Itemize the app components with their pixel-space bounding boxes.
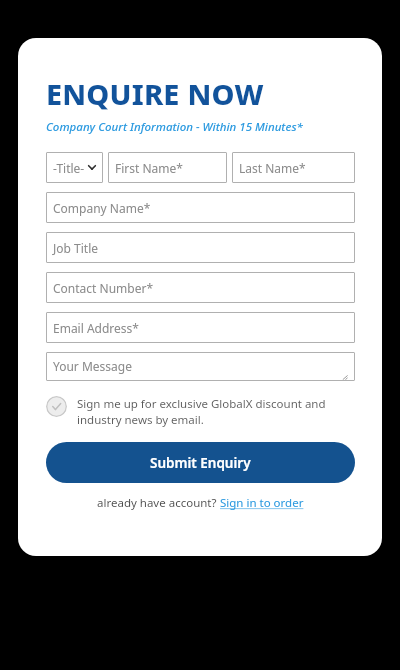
staticText: Sign me up for exclusive GlobalX discoun… bbox=[77, 396, 355, 427]
button[interactable]: Company Name* bbox=[46, 192, 355, 223]
button[interactable]: Your Message bbox=[46, 352, 355, 381]
button[interactable]: Last Name* bbox=[232, 152, 355, 183]
staticText: Last Name* bbox=[239, 160, 306, 176]
button[interactable]: Contact Number* bbox=[46, 272, 355, 303]
button[interactable]: Sign up for marketing emails bbox=[46, 395, 355, 427]
staticText: ENQUIRE NOW bbox=[46, 74, 264, 113]
staticText: Email Address* bbox=[53, 320, 139, 336]
button[interactable]: Email Address* bbox=[46, 312, 355, 343]
staticText: Contact Number* bbox=[53, 280, 154, 296]
other: Sign up for marketing emails bbox=[46, 396, 67, 417]
staticText: Company Name* bbox=[53, 200, 151, 216]
staticText: Sign in to order bbox=[220, 495, 304, 511]
button[interactable]: -Title- bbox=[46, 152, 103, 183]
button[interactable]: Sign in to order bbox=[220, 495, 304, 511]
button[interactable]: Job Title bbox=[46, 232, 355, 263]
button[interactable]: Submit Enquiry bbox=[46, 442, 355, 483]
staticText: -Title- bbox=[53, 160, 85, 176]
staticText: Your Message bbox=[53, 358, 132, 374]
staticText: Submit Enquiry bbox=[150, 454, 251, 472]
button[interactable]: First Name* bbox=[108, 152, 227, 183]
staticText: First Name* bbox=[115, 160, 183, 176]
staticText: Job Title bbox=[53, 240, 99, 256]
staticText: Company Court Information - Within 15 Mi… bbox=[46, 119, 303, 135]
staticText: already have account? bbox=[97, 495, 220, 511]
